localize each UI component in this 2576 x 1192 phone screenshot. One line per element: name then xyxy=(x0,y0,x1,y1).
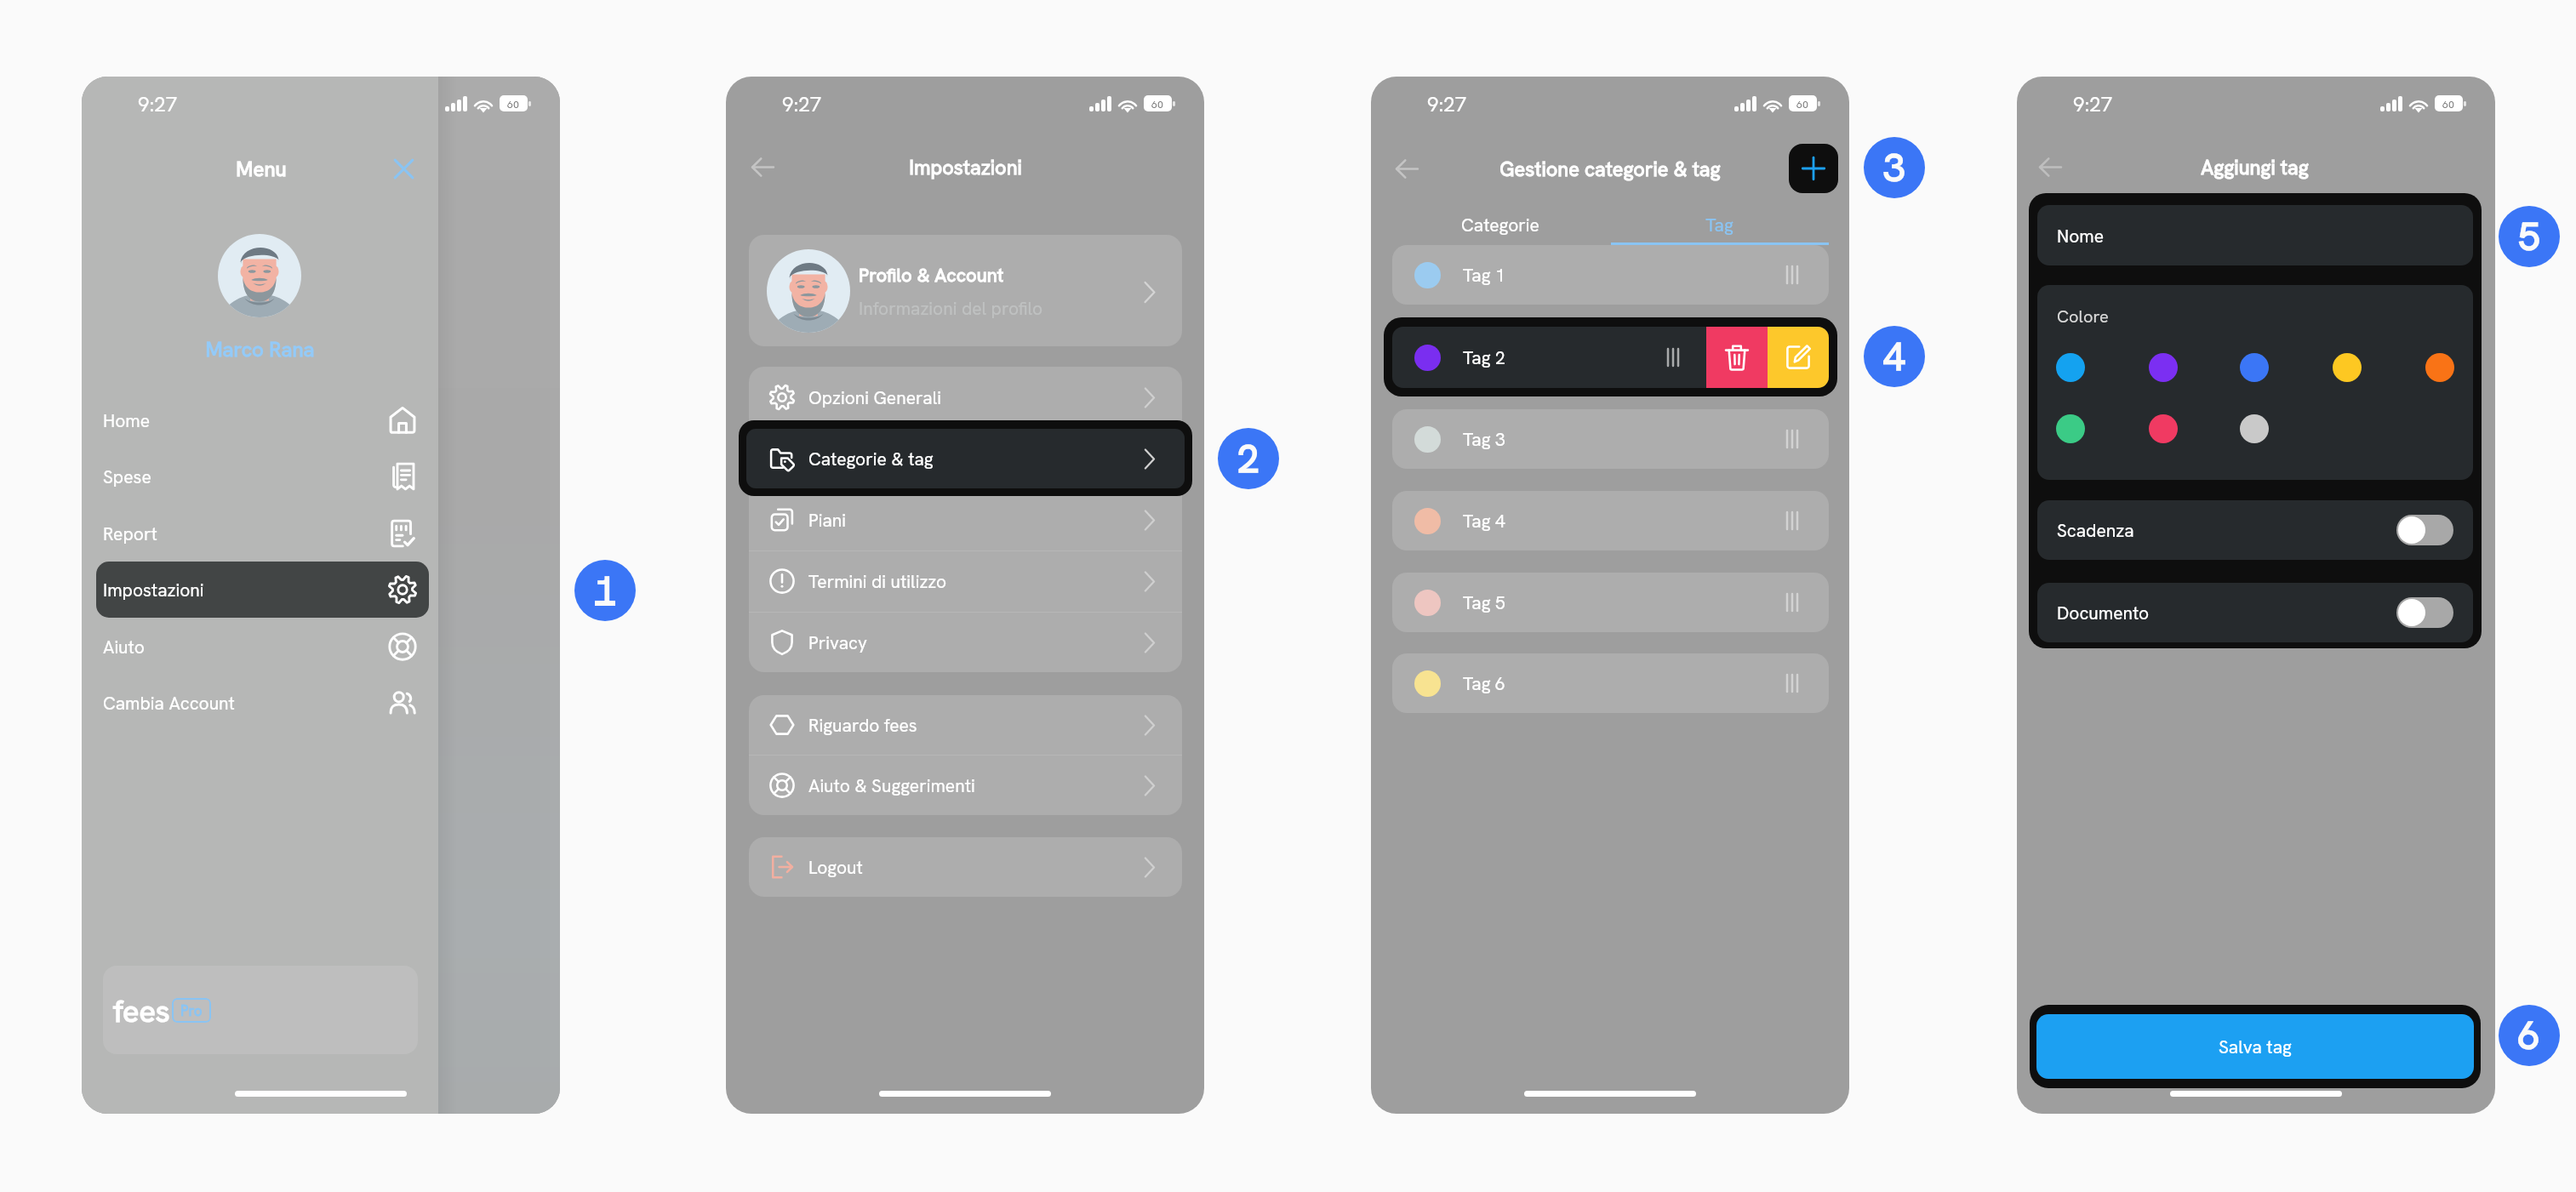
staticText: Privacy xyxy=(808,631,867,654)
staticText: Informazioni del profilo xyxy=(859,297,1043,320)
button[interactable] xyxy=(1611,202,1829,247)
staticText: Profilo & Account xyxy=(859,263,1004,288)
button[interactable]: Close menu xyxy=(380,145,427,192)
button[interactable] xyxy=(96,619,429,675)
button[interactable] xyxy=(96,562,429,618)
button[interactable] xyxy=(1392,573,1829,632)
button[interactable] xyxy=(96,505,429,562)
button[interactable]: Reorder xyxy=(1773,256,1811,294)
staticText: Aiuto xyxy=(103,636,145,659)
staticText: Tag 2 xyxy=(1463,346,1505,369)
button[interactable] xyxy=(96,448,429,505)
staticText: Termini di utilizzo xyxy=(808,570,947,593)
button[interactable]: Back xyxy=(740,145,785,189)
staticText: Tag 5 xyxy=(1463,591,1505,614)
button[interactable] xyxy=(1392,327,1706,388)
button[interactable]: Back xyxy=(2028,145,2072,189)
button[interactable] xyxy=(1392,245,1829,305)
staticText: Tag 4 xyxy=(1463,510,1505,533)
staticText: 3 xyxy=(1883,142,1905,193)
staticText: fees xyxy=(113,991,170,1031)
staticText: Marco Rana xyxy=(205,336,315,362)
button[interactable]: Yellow xyxy=(2333,353,2362,382)
staticText: Piani xyxy=(808,509,846,532)
button[interactable] xyxy=(749,489,1182,550)
staticText: Nome xyxy=(2057,225,2105,248)
staticText: 9:27 xyxy=(782,91,822,117)
staticText: Gestione categorie & tag xyxy=(1499,156,1721,182)
staticText: 9:27 xyxy=(138,91,178,117)
button[interactable] xyxy=(749,695,1182,755)
staticText: Cambia Account xyxy=(103,692,235,715)
button[interactable] xyxy=(749,367,1182,428)
staticText: Opzioni Generali xyxy=(808,386,941,409)
button[interactable]: Pink xyxy=(2149,414,2178,443)
staticText: Aggiungi tag xyxy=(2201,154,2309,180)
staticText: 5 xyxy=(2518,211,2540,262)
button[interactable] xyxy=(96,675,429,731)
staticText: Riguardo fees xyxy=(808,714,917,737)
button[interactable]: Light blue xyxy=(2056,353,2085,382)
staticText: Documento xyxy=(2057,602,2150,625)
button[interactable] xyxy=(749,837,1182,897)
staticText: Report xyxy=(103,522,157,545)
staticText: Impostazioni xyxy=(909,154,1022,180)
button[interactable]: Purple xyxy=(2149,353,2178,382)
staticText: Pro xyxy=(180,1001,203,1020)
staticText: 60 xyxy=(507,97,520,111)
button[interactable]: Green xyxy=(2056,414,2085,443)
staticText: 9:27 xyxy=(1427,91,1467,117)
button[interactable] xyxy=(2037,583,2473,642)
staticText: 60 xyxy=(1796,97,1809,111)
button[interactable]: Reorder xyxy=(1773,502,1811,539)
staticText: 6 xyxy=(2518,1010,2540,1061)
staticText: Categorie xyxy=(1461,214,1539,237)
button[interactable] xyxy=(749,612,1182,673)
button[interactable] xyxy=(96,392,429,448)
staticText: Aiuto & Suggerimenti xyxy=(808,774,975,797)
button[interactable]: Grey xyxy=(2240,414,2269,443)
staticText: Categorie & tag xyxy=(808,448,934,471)
staticText: Logout xyxy=(808,856,863,879)
staticText: 60 xyxy=(1151,97,1164,111)
button[interactable] xyxy=(2037,500,2473,560)
button[interactable]: Salva tag xyxy=(2036,1014,2474,1079)
staticText: Home xyxy=(103,409,151,432)
button[interactable] xyxy=(749,756,1182,815)
staticText: 60 xyxy=(2442,97,2455,111)
button[interactable]: Reorder xyxy=(1654,339,1692,376)
button[interactable] xyxy=(1392,202,1611,247)
button[interactable]: Reorder xyxy=(1773,664,1811,702)
staticText: Tag 1 xyxy=(1463,264,1505,287)
button[interactable]: Blue xyxy=(2240,353,2269,382)
button[interactable]: Delete xyxy=(1706,327,1768,388)
button[interactable]: Reorder xyxy=(1773,420,1811,458)
staticText: Tag 3 xyxy=(1463,428,1505,451)
button[interactable]: Add tag xyxy=(1789,144,1838,193)
staticText: Spese xyxy=(103,465,151,488)
button[interactable] xyxy=(1392,653,1829,713)
staticText: 2 xyxy=(1237,433,1259,484)
staticText: Scadenza xyxy=(2057,519,2134,542)
button[interactable] xyxy=(1392,409,1829,469)
staticText: Menu xyxy=(236,156,287,182)
button[interactable] xyxy=(749,550,1182,612)
staticText: 4 xyxy=(1883,331,1905,382)
staticText: Colore xyxy=(2057,305,2109,328)
staticText: Tag 6 xyxy=(1463,672,1505,695)
staticText: Tag xyxy=(1705,214,1734,237)
button[interactable] xyxy=(746,429,1185,488)
button[interactable]: Back xyxy=(1385,146,1429,191)
button[interactable]: Orange xyxy=(2425,353,2454,382)
staticText: 9:27 xyxy=(2073,91,2113,117)
staticText: 1 xyxy=(594,565,616,616)
button[interactable]: Reorder xyxy=(1773,584,1811,621)
staticText: Salva tag xyxy=(2219,1035,2292,1058)
button[interactable] xyxy=(1392,491,1829,550)
button[interactable] xyxy=(2037,205,2473,265)
button[interactable] xyxy=(749,235,1182,346)
staticText: Impostazioni xyxy=(103,579,204,602)
button[interactable]: Edit xyxy=(1768,327,1829,388)
